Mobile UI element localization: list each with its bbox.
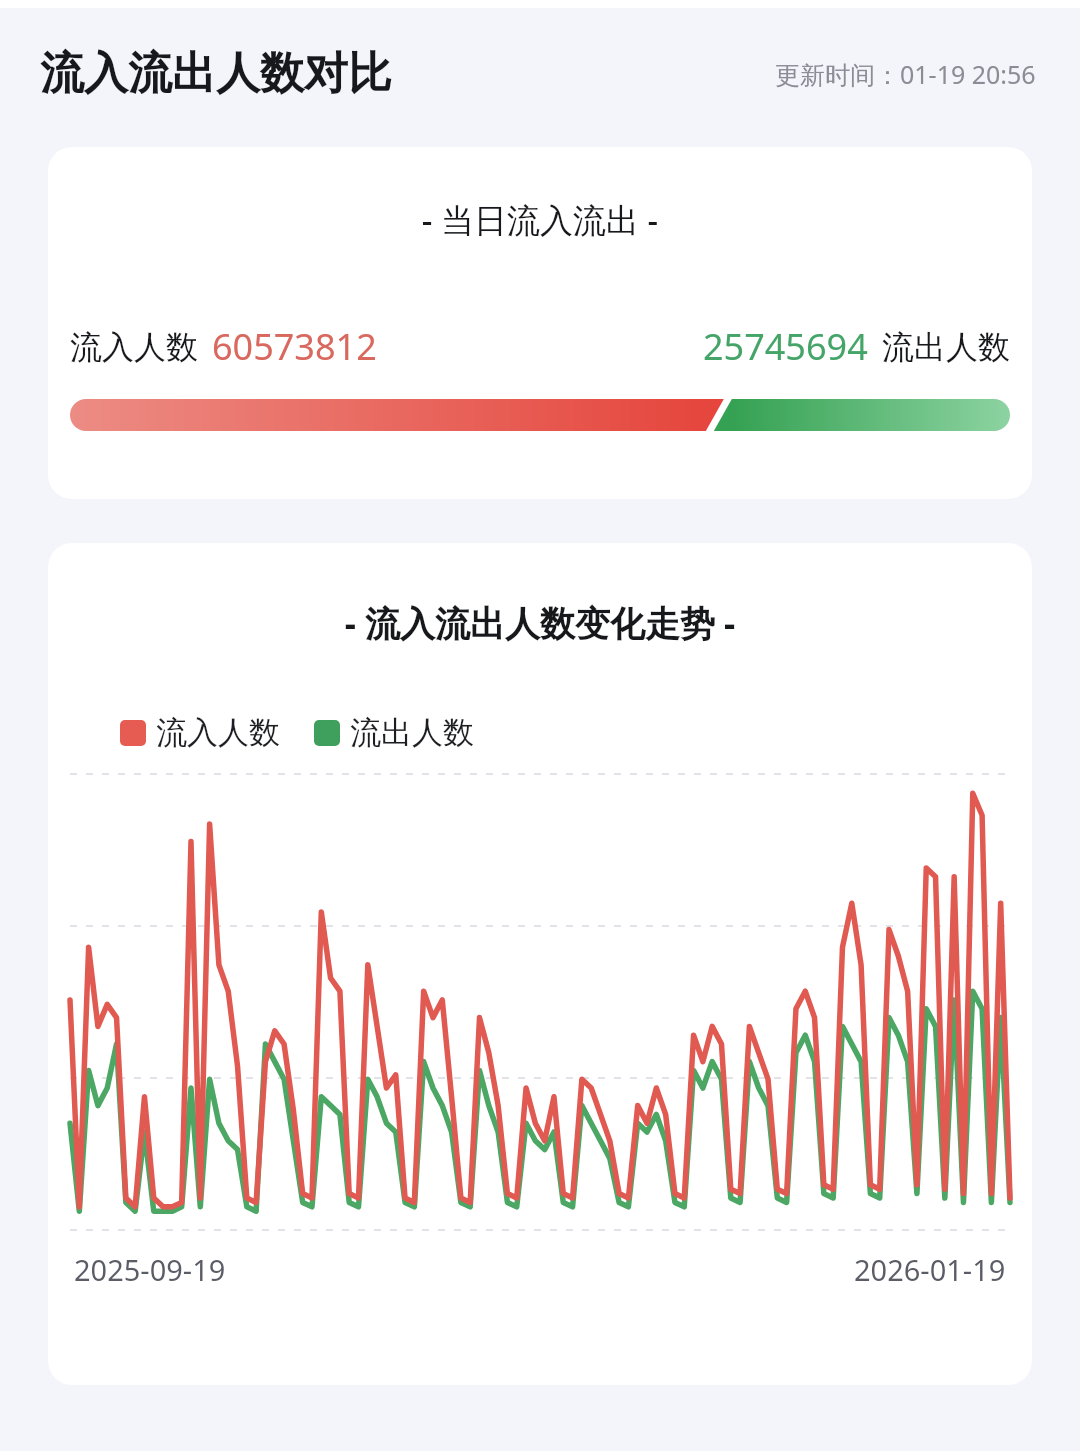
staticText: 更新时间：01-19 20:56: [775, 57, 1036, 91]
staticText: 25745694: [703, 322, 868, 371]
other: 流入流出人数变化走势图: [70, 774, 1010, 1230]
staticText: 60573812: [212, 322, 377, 371]
staticText: 流出人数: [882, 327, 1010, 367]
staticText: 流入人数: [156, 713, 280, 752]
staticText: 流出人数: [350, 713, 474, 752]
button[interactable]: - 当日流入流出 -: [48, 147, 1032, 499]
staticText: 2026-01-19: [854, 1250, 1006, 1289]
staticText: 流入人数: [70, 327, 198, 367]
button[interactable]: - 流入流出人数变化走势 -: [48, 543, 1032, 1385]
staticText: - 流入流出人数变化走势 -: [48, 599, 1032, 647]
staticText: - 当日流入流出 -: [48, 197, 1032, 242]
staticText: 2025-09-19: [74, 1250, 226, 1289]
staticText: 流入流出人数对比: [40, 46, 392, 101]
